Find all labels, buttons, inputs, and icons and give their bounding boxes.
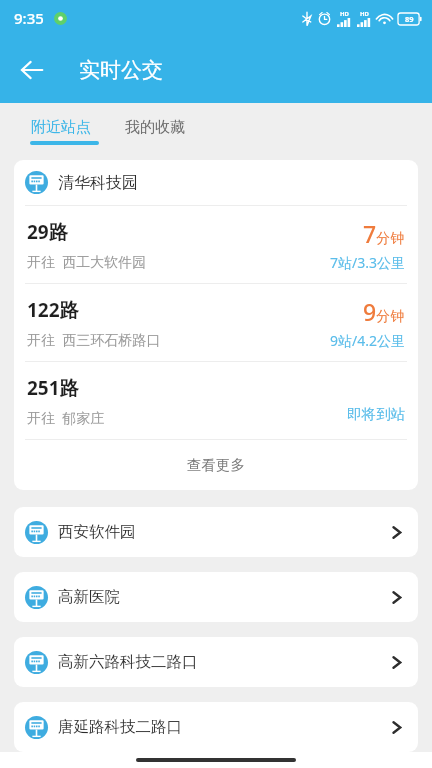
staticText: 西安软件园 [58,522,389,542]
staticText: 9站/4.2公里 [330,331,405,350]
staticText: 开往 郁家庄 [27,408,105,427]
staticText: HD [340,10,349,18]
button[interactable]: 附近站点 [22,111,100,144]
staticText: 89 [405,14,414,24]
staticText: 251路 [27,375,79,401]
staticText: 查看更多 [187,456,245,474]
button[interactable]: 我的收藏 [116,111,194,144]
staticText: 9分钟 [363,296,405,327]
staticText: HD [360,10,369,18]
button[interactable]: 唐延路科技二路口 [14,702,418,752]
button[interactable]: 高新六路科技二路口 [14,637,418,687]
staticText: 高新医院 [58,587,389,607]
button[interactable]: 251路 [14,362,418,439]
button[interactable]: 29路 [14,206,418,283]
staticText: 9:35 [14,8,44,28]
staticText: 即将到站 [347,405,405,423]
button[interactable]: 清华科技园 [14,160,418,205]
staticText: 实时公交 [79,57,163,83]
staticText: 7分钟 [363,218,405,249]
staticText: 7站/3.3公里 [330,253,405,272]
button[interactable]: 查看更多 [14,440,418,490]
button[interactable]: 高新医院 [14,572,418,622]
staticText: 清华科技园 [58,173,138,193]
button[interactable]: 122路 [14,284,418,361]
staticText: 我的收藏 [125,118,185,137]
staticText: 附近站点 [31,118,91,137]
staticText: 唐延路科技二路口 [58,717,389,737]
staticText: 122路 [27,297,79,323]
staticText: 29路 [27,219,68,245]
button[interactable]: Back [9,47,55,93]
staticText: 高新六路科技二路口 [58,652,389,672]
button[interactable]: 西安软件园 [14,507,418,557]
staticText: 开往 西三环石桥路口 [27,330,161,349]
staticText: 开往 西工大软件园 [27,252,147,271]
